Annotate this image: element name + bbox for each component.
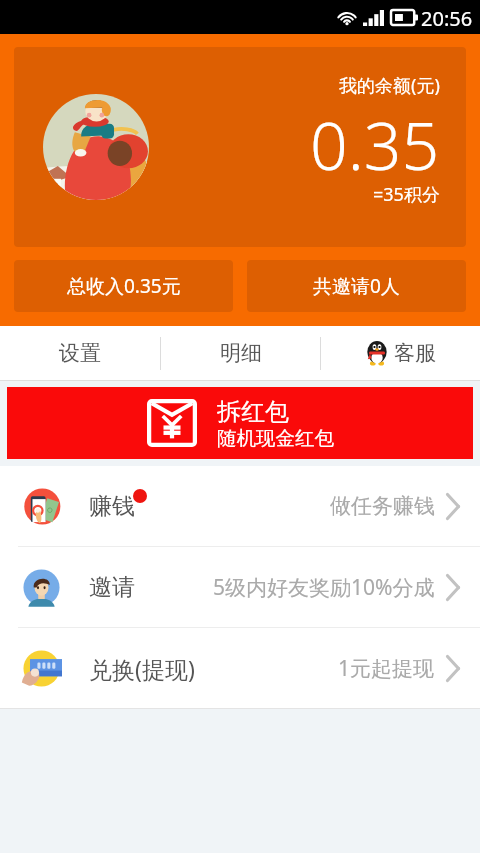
- button[interactable]: 共邀请0人: [247, 260, 466, 312]
- staticText: 0.35: [310, 99, 440, 189]
- button[interactable]: 设置: [0, 326, 160, 380]
- staticText: 1元起提现: [338, 654, 435, 683]
- staticText: 做任务赚钱: [330, 493, 435, 519]
- staticText: 我的余额(元): [339, 73, 440, 98]
- staticText: 兑换(提现): [89, 653, 195, 684]
- staticText: 拆红包: [217, 397, 289, 427]
- staticText: =35积分: [373, 182, 440, 207]
- button[interactable]: 总收入0.35元: [14, 260, 233, 312]
- staticText: 5级内好友奖励10%分成: [213, 573, 435, 602]
- button[interactable]: 赚钱: [0, 466, 480, 546]
- button[interactable]: Profile avatar: [43, 94, 149, 200]
- button[interactable]: 明细: [161, 326, 320, 380]
- staticText: 共邀请0人: [313, 273, 400, 299]
- staticText: 随机现金红包: [217, 426, 334, 451]
- button[interactable]: 邀请: [0, 547, 480, 627]
- button[interactable]: 拆红包: [7, 387, 473, 459]
- staticText: 赚钱: [89, 492, 135, 521]
- staticText: 邀请: [89, 573, 135, 602]
- button[interactable]: 兑换(提现): [0, 628, 480, 708]
- button[interactable]: Profile avatar: [14, 47, 466, 247]
- staticText: 客服: [394, 340, 436, 366]
- button[interactable]: 客服: [321, 326, 480, 380]
- staticText: 20:56: [421, 5, 473, 32]
- staticText: 明细: [220, 340, 262, 366]
- staticText: 总收入0.35元: [67, 273, 181, 299]
- staticText: 设置: [59, 340, 101, 366]
